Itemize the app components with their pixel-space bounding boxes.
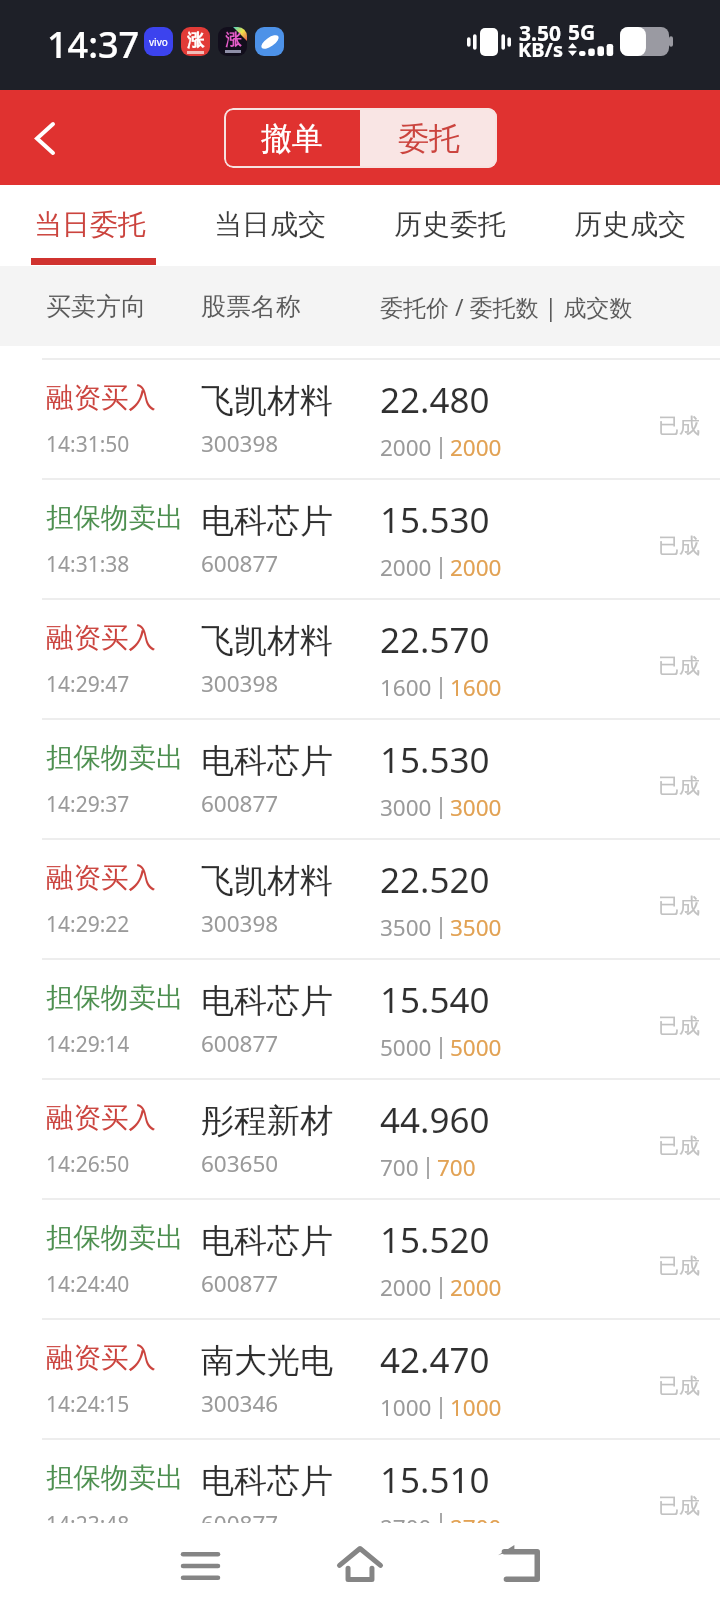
staticText: 15.530 [380, 496, 490, 544]
staticText: 700 [437, 1152, 476, 1183]
staticText: 南大光电 [201, 1340, 333, 1382]
staticText: 14:37 [47, 20, 140, 69]
staticText: 担保物卖出 [46, 501, 184, 536]
staticText: 14:29:37 [46, 790, 130, 819]
button[interactable]: Home [310, 1521, 410, 1606]
staticText: 涨 [225, 30, 241, 50]
staticText: 14:31:38 [46, 550, 130, 579]
staticText: 融资买入 [46, 1101, 156, 1136]
staticText: 1600 [380, 672, 432, 703]
staticText: 当日委托 [34, 207, 146, 242]
staticText: 买卖方向 [46, 291, 146, 322]
staticText: 已成 [658, 1013, 700, 1039]
staticText: 3500 [380, 912, 432, 943]
staticText: 600877 [201, 1508, 279, 1523]
staticText: 2700 [380, 1512, 432, 1523]
staticText: 电科芯片 [201, 980, 333, 1022]
staticText: 已成 [658, 653, 700, 679]
button[interactable]: 担保物卖出 [0, 1198, 720, 1318]
button[interactable]: 融资买入 [0, 1078, 720, 1198]
staticText: 14:24:40 [46, 1270, 130, 1299]
staticText: 14:24:15 [46, 1390, 130, 1419]
staticText: 1000 [380, 1392, 432, 1423]
button[interactable]: 当日成交 [180, 185, 360, 266]
staticText: 飞凯材料 [201, 380, 333, 422]
staticText: 已成 [658, 773, 700, 799]
button[interactable]: 历史成交 [540, 185, 720, 266]
staticText: 14:29:14 [46, 1030, 130, 1059]
staticText: 已成 [658, 1133, 700, 1159]
staticText: 600877 [201, 548, 279, 579]
staticText: 融资买入 [46, 1341, 156, 1376]
button[interactable]: 担保物卖出 [0, 1438, 720, 1523]
button[interactable]: 融资买入 [0, 598, 720, 718]
staticText: 600877 [201, 788, 279, 819]
staticText: 22.570 [380, 616, 490, 664]
staticText: 42.470 [380, 1336, 490, 1384]
staticText: 300346 [201, 1388, 279, 1419]
staticText: 已成 [658, 1373, 700, 1399]
staticText: 14:29:47 [46, 670, 130, 699]
staticText: 历史成交 [574, 207, 686, 242]
staticText: 电科芯片 [201, 740, 333, 782]
button[interactable]: 撤单 [224, 108, 360, 168]
button[interactable]: 融资买入 [0, 358, 720, 478]
staticText: 担保物卖出 [46, 981, 184, 1016]
staticText: 融资买入 [46, 861, 156, 896]
button[interactable]: 历史委托 [360, 185, 540, 266]
staticText: 1000 [450, 1392, 502, 1423]
button[interactable]: 当日委托 [0, 185, 180, 266]
button[interactable]: 担保物卖出 [0, 718, 720, 838]
staticText: 已成 [658, 893, 700, 919]
staticText: 3000 [380, 792, 432, 823]
button[interactable]: 委托 [360, 108, 497, 168]
staticText: 300398 [201, 668, 279, 699]
staticText: 3.50 [519, 19, 561, 48]
staticText: 电科芯片 [201, 1460, 333, 1502]
button[interactable]: 融资买入 [0, 1318, 720, 1438]
button[interactable]: Back [15, 108, 75, 168]
staticText: 15.530 [380, 736, 490, 784]
staticText: 股票名称 [201, 291, 301, 322]
staticText: 603650 [201, 1148, 279, 1179]
staticText: 飞凯材料 [201, 620, 333, 662]
staticText: 历史委托 [394, 207, 506, 242]
staticText: 15.520 [380, 1216, 490, 1264]
staticText: 3000 [450, 792, 502, 823]
staticText: 担保物卖出 [46, 1461, 184, 1496]
button[interactable]: 融资买入 [0, 838, 720, 958]
staticText: 委托 [398, 119, 460, 158]
staticText: 彤程新材 [201, 1100, 333, 1142]
staticText: 委托价 / 委托数 | 成交数 [380, 291, 633, 322]
staticText: 已成 [658, 1493, 700, 1519]
staticText: 融资买入 [46, 621, 156, 656]
staticText: 电科芯片 [201, 1220, 333, 1262]
button[interactable]: Back [470, 1521, 570, 1606]
button[interactable]: 担保物卖出 [0, 478, 720, 598]
staticText: 300398 [201, 908, 279, 939]
staticText: 担保物卖出 [46, 741, 184, 776]
staticText: 2000 [450, 552, 502, 583]
staticText: 15.540 [380, 976, 490, 1024]
staticText: 600877 [201, 1028, 279, 1059]
staticText: 700 [380, 1152, 419, 1183]
staticText: 电科芯片 [201, 500, 333, 542]
staticText: 22.520 [380, 856, 490, 904]
staticText: 2000 [380, 552, 432, 583]
staticText: 2700 [450, 1512, 502, 1523]
staticText: 15.510 [380, 1456, 490, 1504]
staticText: 600877 [201, 1268, 279, 1299]
staticText: 已成 [658, 1253, 700, 1279]
button[interactable]: 担保物卖出 [0, 958, 720, 1078]
staticText: 2000 [450, 432, 502, 463]
staticText: 1600 [450, 672, 502, 703]
staticText: 涨 [187, 30, 204, 51]
staticText: 撤单 [261, 119, 323, 158]
staticText: 14:23:48 [46, 1510, 130, 1523]
staticText: 300398 [201, 428, 279, 459]
staticText: 3500 [450, 912, 502, 943]
staticText: KB/s [518, 36, 563, 63]
button[interactable]: Recent apps [150, 1523, 250, 1608]
staticText: 44.960 [380, 1096, 490, 1144]
staticText: 5000 [450, 1032, 502, 1063]
